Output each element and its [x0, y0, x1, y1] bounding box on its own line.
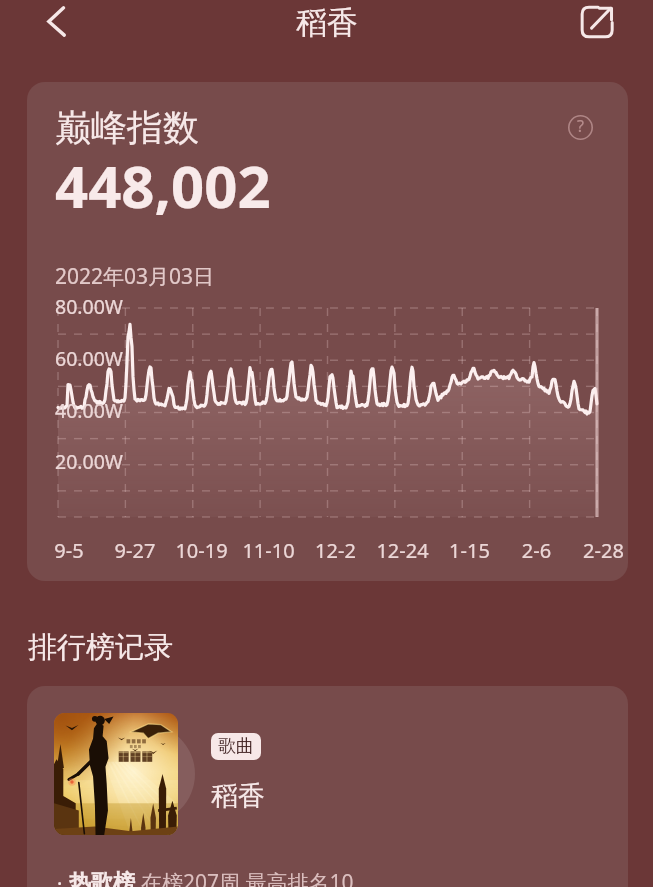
button[interactable]: Back	[30, 0, 82, 47]
button[interactable]: 歌曲	[27, 686, 628, 887]
staticText: 448,002	[55, 146, 271, 225]
button[interactable]: Help	[558, 105, 602, 149]
staticText: 9-5	[36, 537, 102, 564]
staticText: 10-19	[168, 537, 235, 564]
staticText: 2-28	[570, 537, 628, 564]
staticText: 2022年03月03日	[55, 262, 215, 291]
staticText: 1-15	[436, 537, 503, 564]
staticText: 40.00W	[55, 397, 123, 424]
staticText: 稻香	[211, 779, 265, 813]
staticText: 稻香	[296, 3, 358, 42]
staticText: 60.00W	[55, 345, 123, 372]
button[interactable]: Share	[571, 0, 623, 48]
staticText: 20.00W	[55, 448, 123, 475]
staticText: 歌曲	[218, 735, 254, 758]
staticText: 排行榜记录	[28, 629, 173, 666]
staticText: 12-24	[369, 537, 436, 564]
staticText: 巅峰指数	[55, 105, 199, 150]
staticText: 热歌榜	[69, 869, 135, 887]
staticText: 9-27	[102, 537, 168, 564]
staticText: 80.00W	[55, 293, 123, 320]
staticText: 在榜207周 最高排名10	[141, 868, 354, 887]
staticText: ·	[57, 870, 63, 887]
staticText: ?	[577, 115, 584, 137]
staticText: 12-2	[302, 537, 369, 564]
staticText: 2-6	[503, 537, 570, 564]
staticText: 11-10	[235, 537, 302, 564]
